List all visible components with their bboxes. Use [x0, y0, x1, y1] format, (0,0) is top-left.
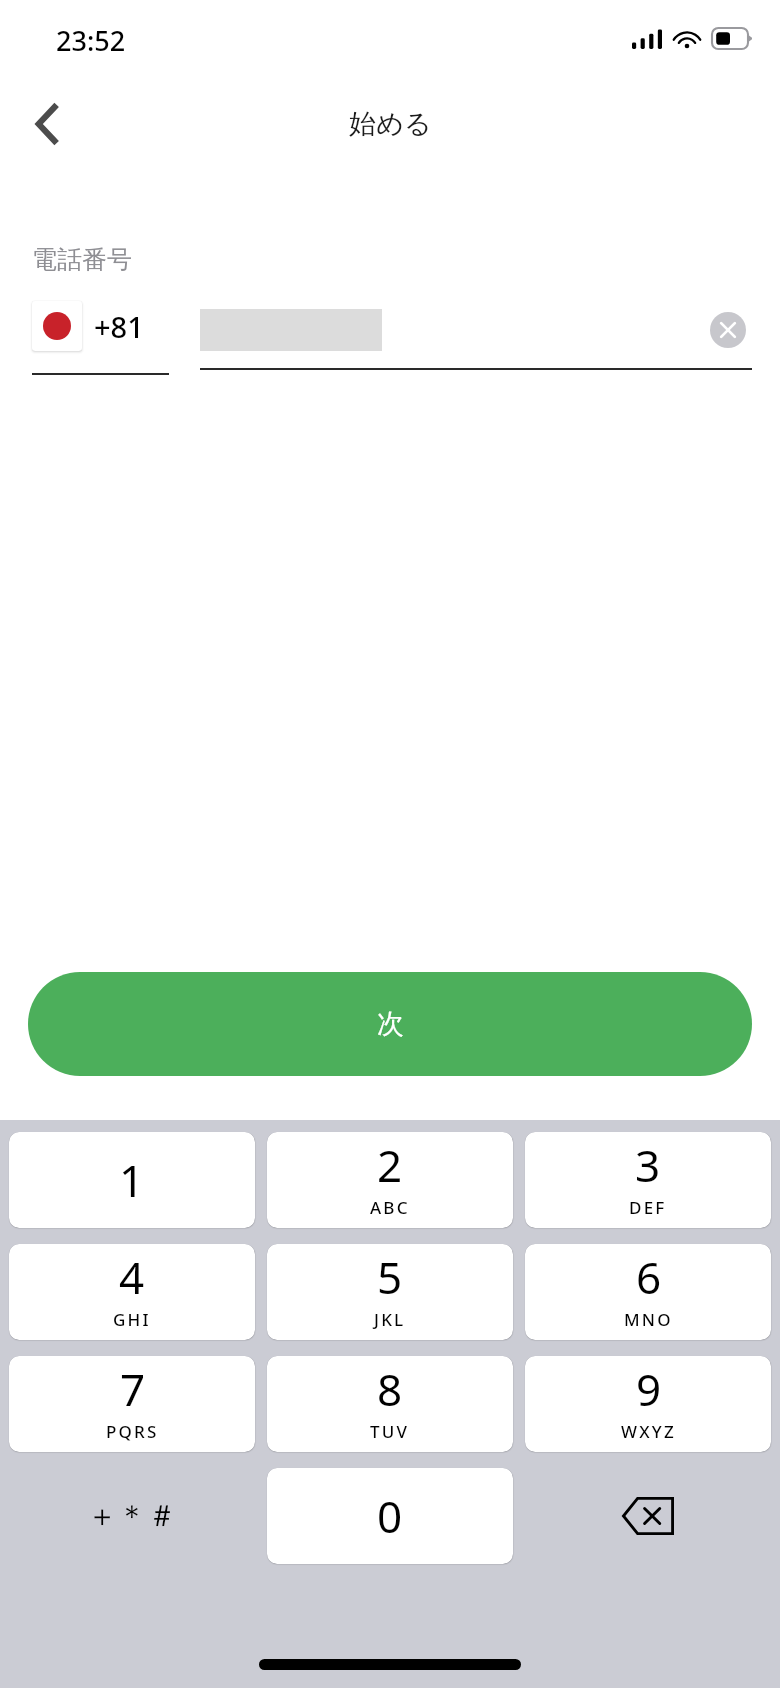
staticText: MNO — [624, 1308, 673, 1331]
staticText: 8 — [377, 1359, 403, 1419]
staticText: ABC — [370, 1196, 410, 1219]
staticText: 3 — [635, 1135, 661, 1195]
button[interactable]: 8 — [267, 1356, 513, 1452]
staticText: 2 — [377, 1135, 403, 1195]
staticText: PQRS — [106, 1420, 159, 1443]
staticText: 6 — [636, 1247, 662, 1307]
button[interactable]: 2 — [267, 1132, 513, 1228]
button[interactable]: 9 — [525, 1356, 771, 1452]
staticText: JKL — [374, 1308, 406, 1331]
staticText: 始める — [349, 107, 432, 141]
staticText: TUV — [370, 1420, 410, 1443]
button[interactable]: 1 — [9, 1132, 255, 1228]
staticText: ＋＊＃ — [87, 1497, 177, 1535]
staticText: 5 — [377, 1247, 403, 1307]
button[interactable]: +81 — [32, 301, 169, 375]
button[interactable]: 5 — [267, 1244, 513, 1340]
button[interactable]: 0 — [267, 1468, 513, 1564]
button[interactable]: 4 — [9, 1244, 255, 1340]
button[interactable]: 次 — [28, 972, 752, 1076]
button[interactable]: 7 — [9, 1356, 255, 1452]
staticText: +81 — [94, 307, 144, 346]
staticText: 電話番号 — [32, 244, 132, 275]
button[interactable]: 3 — [525, 1132, 771, 1228]
staticText: 次 — [377, 1007, 404, 1041]
button[interactable]: Back — [14, 92, 78, 156]
staticText: 4 — [119, 1247, 145, 1307]
staticText: 9 — [636, 1359, 662, 1419]
staticText: GHI — [113, 1308, 151, 1331]
staticText: 0 — [377, 1486, 403, 1546]
staticText: 1 — [119, 1150, 145, 1210]
staticText: 7 — [120, 1359, 146, 1419]
button[interactable]: Clear — [704, 306, 752, 354]
button[interactable]: Symbols — [9, 1468, 255, 1564]
button[interactable]: 6 — [525, 1244, 771, 1340]
staticText: WXYZ — [621, 1420, 676, 1443]
staticText: DEF — [629, 1196, 667, 1219]
staticText: 23:52 — [56, 22, 126, 59]
button[interactable]: Backspace — [525, 1468, 771, 1564]
